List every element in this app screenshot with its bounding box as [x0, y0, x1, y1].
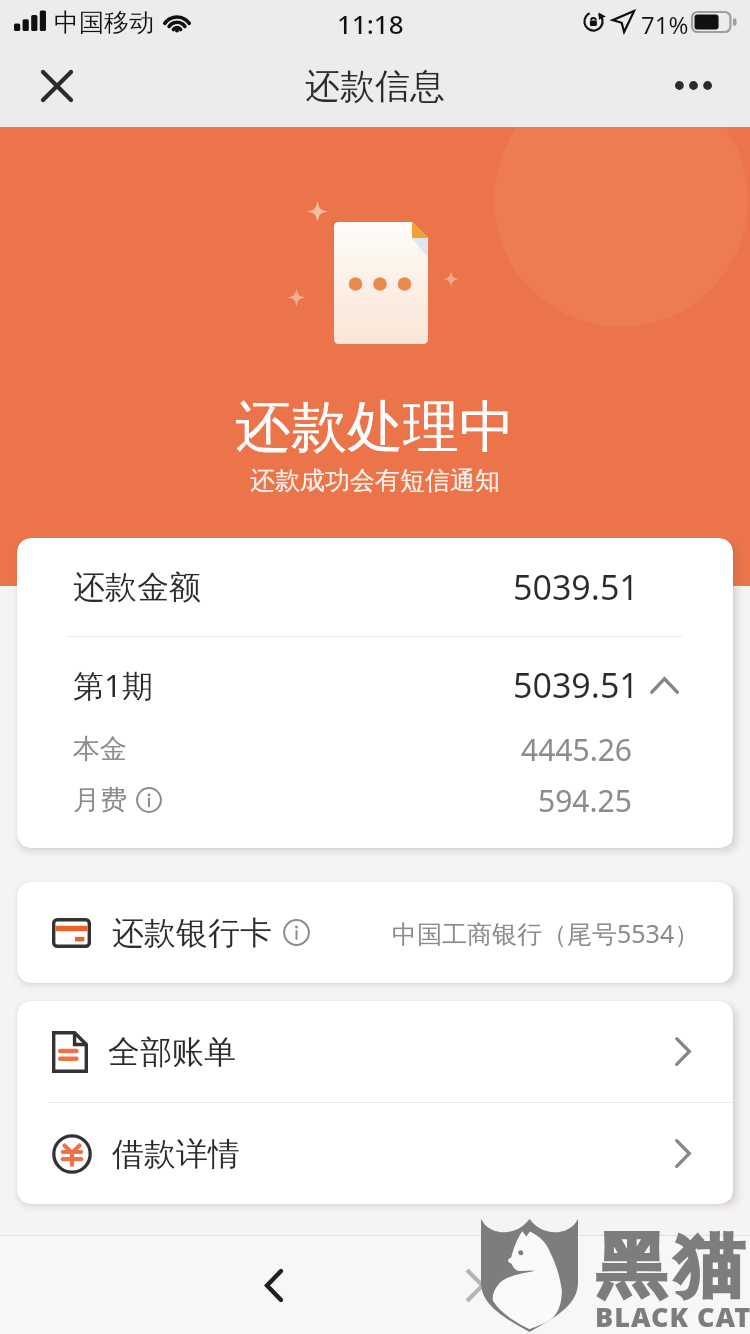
button[interactable]: 还款金额	[17, 538, 733, 636]
button[interactable]: Close	[14, 44, 100, 127]
staticText: 还款成功会有短信通知	[250, 465, 500, 496]
staticText: 还款信息	[305, 64, 445, 108]
staticText: 中国工商银行（尾号5534）	[392, 916, 700, 950]
staticText: 5039.51	[513, 564, 639, 610]
staticText: 还款金额	[73, 567, 201, 607]
staticText: 11:18	[337, 6, 404, 41]
staticText: 4445.26	[521, 729, 632, 770]
staticText: 71%	[641, 8, 689, 41]
staticText: 全部账单	[108, 1032, 236, 1072]
staticText: 借款详情	[112, 1134, 240, 1174]
button[interactable]: Close	[437, 1240, 527, 1330]
button[interactable]: Back	[229, 1240, 319, 1330]
staticText: 还款银行卡	[112, 913, 272, 953]
staticText: 594.25	[538, 780, 632, 821]
button[interactable]: 借款详情	[17, 1103, 733, 1204]
staticText: 5039.51	[513, 662, 639, 708]
button[interactable]: More options	[650, 44, 736, 127]
button[interactable]: 还款银行卡	[17, 882, 733, 983]
button[interactable]: 第1期	[17, 637, 733, 733]
staticText: 月费	[73, 783, 127, 817]
staticText: 第1期	[73, 664, 153, 706]
staticText: 黑猫	[592, 1223, 748, 1311]
staticText: 中国移动	[54, 7, 154, 38]
staticText: 本金	[73, 732, 127, 766]
staticText: BLACK CAT	[595, 1298, 750, 1334]
button[interactable]: 全部账单	[17, 1001, 733, 1102]
staticText: 还款处理中	[235, 392, 515, 463]
